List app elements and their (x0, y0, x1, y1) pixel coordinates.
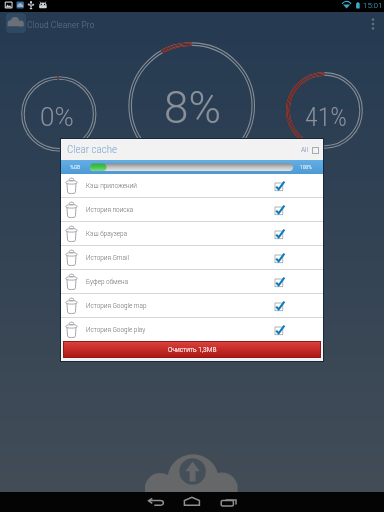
staticText: 100% (300, 164, 313, 170)
button[interactable]: Recents (232, 492, 264, 512)
button[interactable]: История Google map (61, 294, 323, 317)
button[interactable]: Очистить 1,3MB (63, 341, 321, 358)
button[interactable]: Кэш приложений (61, 174, 323, 197)
button[interactable]: Back (120, 492, 152, 512)
staticText: %GB (70, 164, 81, 170)
button[interactable]: История Google play (61, 318, 323, 341)
staticText: Кэш приложений (86, 182, 137, 190)
staticText: История поиска (86, 206, 134, 214)
staticText: Clear cache (67, 143, 118, 156)
staticText: Cloud Cleaner Pro (27, 19, 95, 30)
button[interactable]: Буфер обмена (61, 270, 323, 293)
staticText: 41% (305, 102, 347, 132)
button[interactable]: Home (176, 492, 208, 512)
staticText: All (301, 146, 309, 154)
staticText: 8% (164, 82, 221, 134)
staticText: 15:01 (363, 1, 383, 10)
button[interactable]: История Gmail (61, 246, 323, 269)
staticText: Буфер обмена (86, 278, 129, 286)
staticText: История Google map (86, 302, 147, 310)
staticText: Очистить 1,3MB (168, 346, 217, 354)
staticText: 0% (40, 102, 74, 132)
staticText: Кэш браузера (86, 230, 128, 238)
button[interactable]: More options (362, 13, 384, 35)
staticText: История Google play (86, 326, 146, 334)
button[interactable]: Кэш браузера (61, 222, 323, 245)
button[interactable]: История поиска (61, 198, 323, 221)
staticText: История Gmail (86, 254, 129, 262)
